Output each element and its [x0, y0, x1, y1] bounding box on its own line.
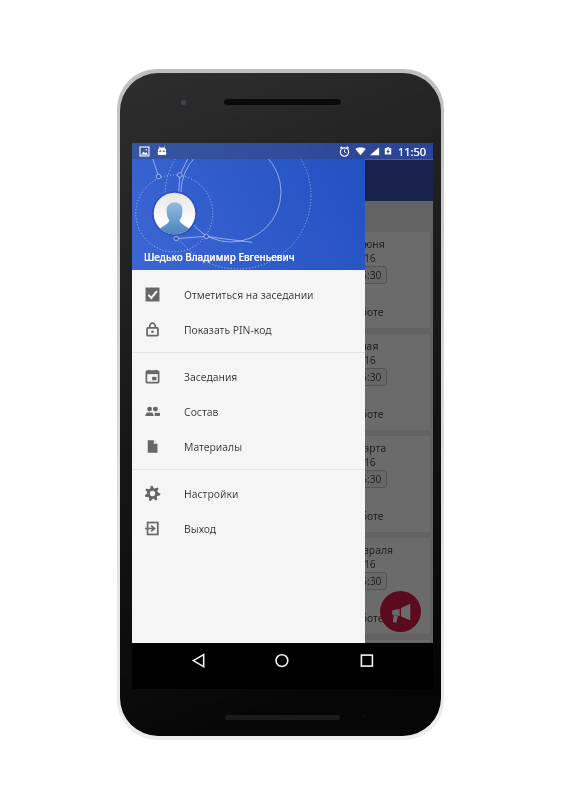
button[interactable]: Отметиться на заседании	[132, 277, 365, 312]
staticText: 15:30	[355, 268, 382, 282]
staticText: Заседание о работе	[284, 305, 384, 319]
staticText: 12 июня	[343, 237, 385, 251]
button[interactable]: Заседания	[132, 359, 365, 394]
staticText: 2016	[352, 353, 376, 367]
staticText: 11:50	[398, 144, 427, 159]
button[interactable]: Состав	[132, 394, 365, 429]
staticText: Выход	[184, 522, 217, 536]
button[interactable]: 12 июня	[134, 231, 431, 329]
staticText: 5 мая	[350, 339, 379, 353]
staticText: Заседания	[184, 370, 238, 384]
button[interactable]: Выход	[132, 511, 365, 546]
staticText: 14 февраля	[335, 543, 394, 557]
staticText: 27 марта	[341, 441, 387, 455]
staticText: 2016	[352, 455, 376, 469]
staticText: Настройки	[184, 487, 239, 501]
staticText: Показать PIN-код	[184, 323, 272, 337]
button[interactable]: 14 февраля	[134, 537, 431, 635]
staticText: Заседание о работе	[284, 407, 384, 421]
staticText: 15:30	[355, 472, 382, 486]
staticText: Заседание о работе	[284, 713, 384, 717]
staticText: Состав	[184, 405, 219, 419]
staticText: 2016	[352, 251, 376, 265]
staticText: Материалы	[184, 440, 243, 454]
staticText: Отметиться на заседании	[184, 288, 314, 302]
staticText: Шедько Владимир Евгеньевич	[144, 250, 295, 263]
staticText: Заседание о работе	[284, 611, 384, 625]
staticText: 2016	[352, 557, 376, 571]
button[interactable]: Показать PIN-код	[132, 312, 365, 347]
button[interactable]: 27 марта	[134, 435, 431, 533]
staticText: 15:30	[355, 370, 382, 384]
button[interactable]: 12 июня	[134, 639, 431, 643]
staticText: 15:30	[355, 574, 382, 588]
button[interactable]: 5 мая	[134, 333, 431, 431]
button[interactable]: Материалы	[132, 429, 365, 464]
staticText: Заседание о работе	[284, 509, 384, 523]
button[interactable]: Announcement	[380, 591, 421, 632]
button[interactable]: Настройки	[132, 476, 365, 511]
